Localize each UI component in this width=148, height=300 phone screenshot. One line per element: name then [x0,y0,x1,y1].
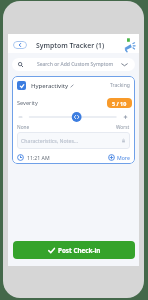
button[interactable]: Search or Add Custom Symptom [12,58,135,71]
staticText: Tracking [110,82,130,89]
button[interactable]: Tracking enabled [17,81,26,90]
staticText: Symptom Tracker (1) [36,41,105,50]
button[interactable]: More [108,154,130,161]
staticText: Search or Add Custom Symptom [37,61,114,68]
staticText: None [17,124,30,131]
button[interactable]: Characteristics, Notes... [17,132,130,149]
button[interactable]: Back [13,41,27,49]
staticText: Hyperactivity [31,82,69,90]
staticText: Post Check-in [58,246,101,255]
staticText: 5 / 10 [112,100,127,107]
button[interactable]: Announcements [121,37,137,53]
staticText: Characteristics, Notes... [21,137,79,144]
staticText: More [117,154,130,161]
staticText: Worst [116,124,130,131]
staticText: Severity [17,99,38,107]
button[interactable]: Post Check-in [13,241,135,259]
button[interactable]: 11:21 AM [17,154,50,161]
staticText: 11:21 AM [27,154,50,161]
